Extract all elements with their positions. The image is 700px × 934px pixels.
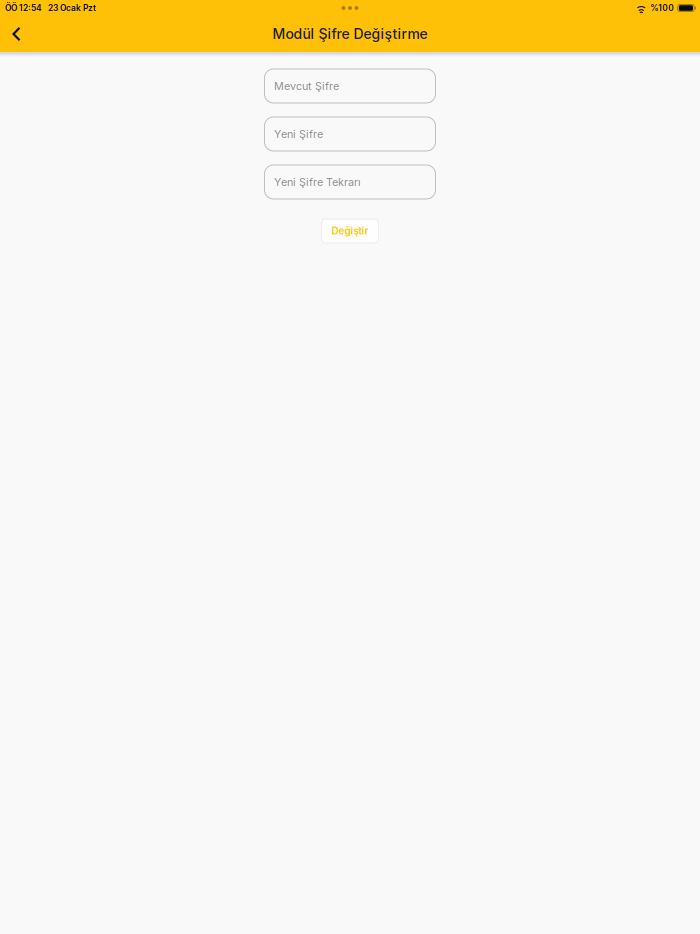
staticText: Yeni Şifre: [274, 127, 323, 141]
staticText: 23 Ocak Pzt: [42, 3, 96, 13]
staticText: Değiştir: [331, 225, 368, 237]
button[interactable]: Yeni Şifre Tekrarı: [264, 165, 435, 199]
button[interactable]: Değiştir: [321, 219, 378, 243]
staticText: Yeni Şifre Tekrarı: [274, 175, 361, 189]
staticText: %100: [650, 3, 674, 13]
staticText: Modül Şifre Değiştirme: [272, 25, 427, 42]
button[interactable]: Back: [0, 17, 33, 51]
button[interactable]: Yeni Şifre: [264, 117, 435, 151]
staticText: Mevcut Şifre: [274, 79, 339, 93]
button[interactable]: Mevcut Şifre: [264, 69, 435, 103]
staticText: ÖÖ 12:54: [5, 3, 42, 13]
